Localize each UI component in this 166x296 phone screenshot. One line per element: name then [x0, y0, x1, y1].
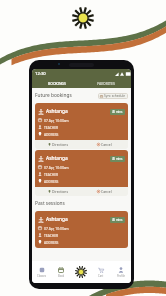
- staticText: TEACHER: [44, 172, 59, 176]
- staticText: 12:30: [35, 71, 46, 77]
- staticText: BOOKINGS: [48, 81, 66, 86]
- staticText: Directions: [52, 189, 69, 194]
- button[interactable]: Cancel: [81, 140, 128, 149]
- staticText: TEACHER: [44, 233, 59, 237]
- button[interactable]: Cancel: [81, 187, 128, 196]
- staticText: ADDRESS: [44, 179, 59, 183]
- staticText: ADDRESS: [44, 132, 59, 136]
- button[interactable]: Classes: [32, 261, 51, 283]
- staticText: Classes: [37, 274, 46, 278]
- button[interactable]: Cart: [91, 261, 111, 283]
- staticText: Ashtanga: [46, 108, 68, 115]
- button[interactable]: Directions: [35, 187, 81, 196]
- staticText: Past sessions: [35, 200, 65, 207]
- button[interactable]: Directions: [35, 140, 81, 149]
- button[interactable]: Ashtanga: [35, 150, 128, 187]
- staticText: FAVORITES: [97, 81, 115, 86]
- staticText: 45 mins: [112, 110, 123, 114]
- staticText: Cart: [98, 274, 104, 278]
- button[interactable]: Book: [51, 261, 71, 283]
- staticText: 07 Apr, 10:00am: [44, 226, 69, 230]
- button[interactable]: Ashtanga: [35, 211, 128, 248]
- staticText: 45 mins: [112, 157, 123, 161]
- staticText: Cancel: [101, 189, 112, 194]
- staticText: TEACHER: [44, 125, 59, 129]
- button[interactable]: FAVORITES: [81, 79, 131, 88]
- button[interactable]: Profile: [111, 261, 131, 283]
- staticText: Future bookings: [35, 92, 72, 99]
- staticText: Book: [58, 274, 65, 278]
- staticText: 45 mins: [112, 218, 123, 222]
- button[interactable]: Sync schedule: [98, 93, 128, 99]
- staticText: 07 Apr, 10:00am: [44, 118, 69, 122]
- staticText: Ashtanga: [46, 216, 68, 223]
- button[interactable]: BOOKINGS: [32, 79, 81, 88]
- staticText: Profile: [117, 274, 125, 278]
- staticText: ADDRESS: [44, 240, 59, 244]
- staticText: Directions: [52, 142, 69, 147]
- button[interactable]: Ashtanga: [35, 103, 128, 140]
- staticText: 07 Apr, 10:00am: [44, 165, 69, 169]
- staticText: Ashtanga: [46, 155, 68, 162]
- staticText: Cancel: [101, 142, 112, 147]
- button[interactable]: Home: [73, 264, 89, 280]
- staticText: Sync schedule: [104, 94, 126, 98]
